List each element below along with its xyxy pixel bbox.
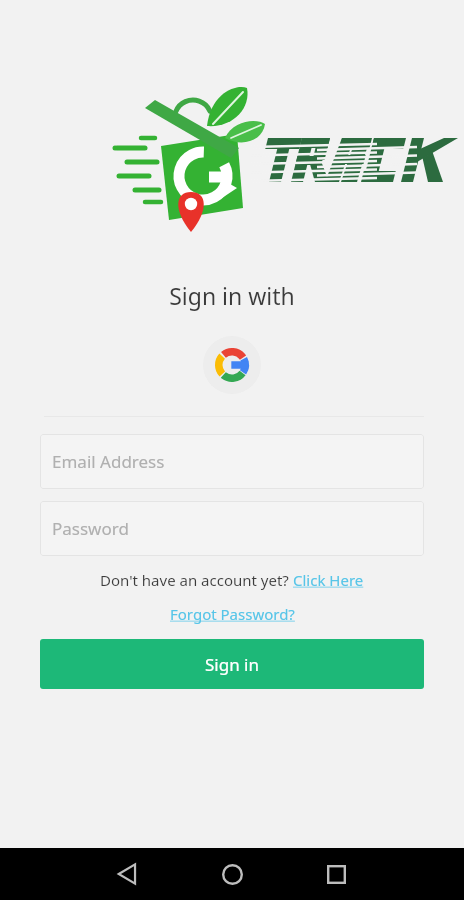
button[interactable]: Sign in with Google (203, 336, 261, 394)
button[interactable]: Forgot Password? (0, 604, 464, 624)
button[interactable]: Email Address (40, 434, 424, 489)
staticText: Don't have an account yet? (100, 570, 293, 590)
button[interactable]: Back (76, 848, 180, 900)
staticText: Forgot Password? (170, 604, 295, 624)
button[interactable]: Password (40, 501, 424, 556)
staticText: Sign in (205, 653, 259, 676)
button[interactable]: Recent apps (284, 848, 388, 900)
staticText: Click Here (293, 570, 364, 590)
button[interactable]: Click Here (293, 570, 364, 590)
staticText: Password (52, 517, 129, 540)
button[interactable]: Sign in (40, 639, 424, 689)
staticText: Email Address (52, 450, 165, 473)
staticText: Sign in with (169, 280, 295, 311)
button[interactable]: Home (180, 848, 284, 900)
